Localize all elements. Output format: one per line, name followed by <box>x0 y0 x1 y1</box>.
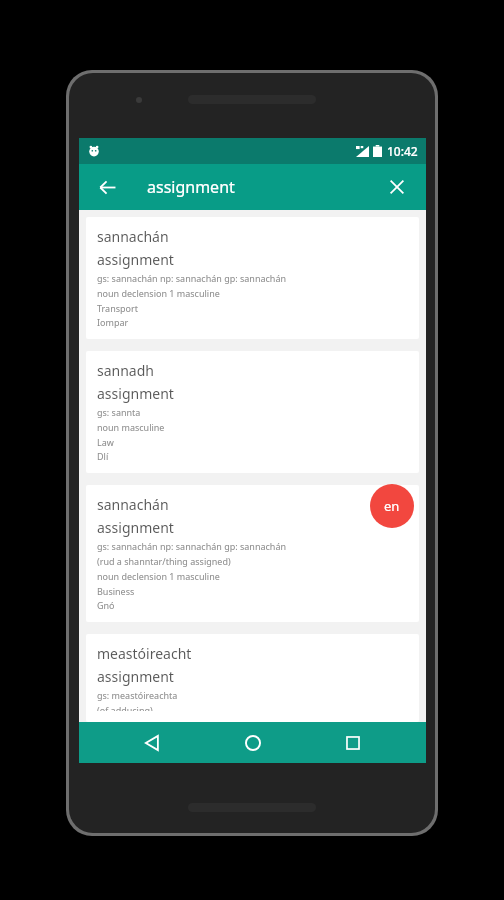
staticText: en <box>384 497 400 515</box>
staticText: noun declension 1 masculine <box>97 287 220 299</box>
button[interactable]: sannachán <box>86 217 419 339</box>
staticText: Dlí <box>97 450 109 462</box>
button[interactable]: Recent apps <box>326 722 380 763</box>
staticText: (rud a shanntar/thing assigned) <box>97 555 231 567</box>
button[interactable]: assignment <box>147 167 347 207</box>
staticText: Gnó <box>97 599 115 611</box>
staticText: noun declension 1 masculine <box>97 570 220 582</box>
staticText: gs: sannta <box>97 406 141 418</box>
staticText: gs: meastóireachta <box>97 689 178 701</box>
button[interactable]: Switch language to English <box>370 484 414 528</box>
staticText: sannachán <box>97 227 169 246</box>
button[interactable]: Close <box>379 169 415 205</box>
staticText: assignment <box>97 667 174 686</box>
button[interactable]: Back <box>125 722 179 763</box>
staticText: assignment <box>147 176 235 198</box>
button[interactable]: meastóireacht <box>86 634 419 722</box>
staticText: assignment <box>97 518 174 537</box>
staticText: assignment <box>97 250 174 269</box>
staticText: gs: sannachán np: sannachán gp: sannachá… <box>97 272 287 284</box>
button[interactable]: Home <box>226 722 280 763</box>
staticText: sannadh <box>97 361 154 380</box>
staticText: Business <box>97 585 135 597</box>
button[interactable]: sannachán <box>86 485 419 622</box>
staticText: sannachán <box>97 495 169 514</box>
staticText: gs: sannachán np: sannachán gp: sannachá… <box>97 540 287 552</box>
staticText: meastóireacht <box>97 644 192 663</box>
staticText: Iompar <box>97 316 129 328</box>
staticText: (of adducing) <box>97 704 153 711</box>
staticText: 10:42 <box>387 143 418 159</box>
staticText: Transport <box>97 302 138 314</box>
staticText: assignment <box>97 384 174 403</box>
staticText: noun masculine <box>97 421 165 433</box>
button[interactable]: sannadh <box>86 351 419 473</box>
staticText: Law <box>97 436 114 448</box>
button[interactable]: Back <box>89 169 125 205</box>
